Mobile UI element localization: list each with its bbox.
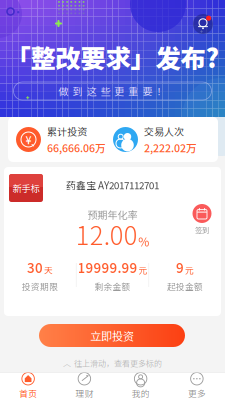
staticText: 9 [176, 258, 184, 277]
staticText: ︿ [63, 357, 71, 369]
staticText: 12.00 [76, 216, 138, 252]
staticText: 投资期限 [22, 280, 58, 292]
staticText: 起投金额 [167, 280, 203, 292]
staticText: ¥ [25, 132, 31, 147]
staticText: 理财 [75, 387, 93, 399]
staticText: 我的 [132, 387, 150, 399]
staticText: 「整改要求」发布? [5, 39, 219, 75]
button[interactable]: 立即投资 [39, 324, 185, 347]
button[interactable]: 我的 [112, 372, 169, 400]
button[interactable]: 首页 [0, 372, 56, 400]
staticText: 19999.99 [77, 258, 137, 277]
staticText: 药鑫宝 AY2017112701 [66, 178, 159, 192]
staticText: 30 [27, 258, 43, 277]
button[interactable]: 通知 [193, 14, 213, 34]
staticText: 更多 [188, 387, 206, 399]
staticText: 累计投资 [47, 124, 87, 138]
staticText: 往上滑动，查看更多标的 [74, 357, 162, 369]
staticText: 剩余金额 [94, 280, 130, 292]
button[interactable]: 更多 [169, 372, 225, 400]
staticText: 元 [138, 263, 147, 276]
staticText: 交易人次 [144, 124, 184, 138]
button[interactable]: 理财 [56, 372, 112, 400]
staticText: 签到 [195, 224, 209, 235]
staticText: 预期年化率 [87, 207, 137, 222]
staticText: 立即投资 [90, 327, 134, 344]
staticText: 首页 [19, 387, 37, 399]
staticText: 2,222.02万 [144, 140, 197, 155]
staticText: % [138, 232, 149, 250]
staticText: 元 [185, 263, 194, 276]
staticText: 新手标 [12, 181, 39, 195]
staticText: 天 [44, 263, 53, 276]
staticText: 66,666.06万 [47, 140, 106, 155]
staticText: 做 到 这 些 更 重 要 ！ [58, 84, 166, 98]
button[interactable]: 签到 [190, 204, 214, 235]
